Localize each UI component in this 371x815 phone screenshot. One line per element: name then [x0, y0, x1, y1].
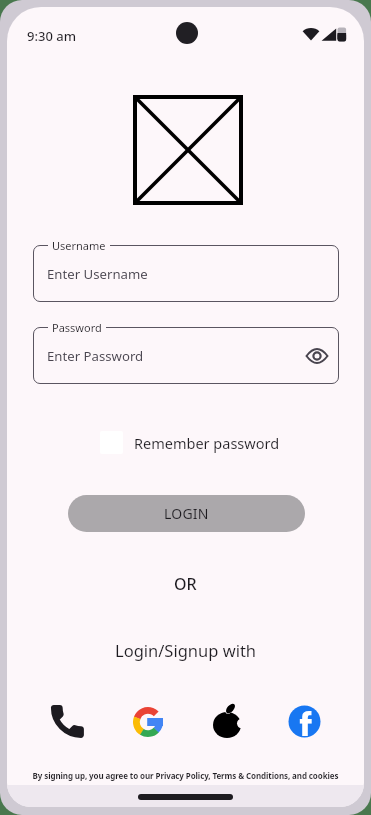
staticText: Password — [52, 320, 102, 335]
staticText: By signing up, you agree to our Privacy … — [7, 770, 364, 781]
staticText: Login/Signup with — [115, 639, 257, 661]
staticText: Username — [52, 238, 106, 253]
button[interactable] — [133, 707, 163, 737]
staticText: OR — [174, 573, 197, 595]
staticText: Enter Username — [47, 265, 148, 283]
staticText: Remember password — [134, 433, 280, 453]
button[interactable]: Enter Username — [33, 245, 339, 302]
button[interactable]: Remember password — [100, 431, 280, 454]
staticText: Enter Password — [47, 347, 144, 365]
button[interactable] — [47, 701, 87, 741]
button[interactable] — [209, 704, 245, 740]
button[interactable]: LOGIN — [68, 495, 305, 532]
button[interactable] — [288, 705, 321, 738]
button[interactable]: Enter Password — [33, 327, 339, 384]
staticText: LOGIN — [164, 504, 209, 523]
staticText: 9:30 am — [27, 27, 76, 45]
